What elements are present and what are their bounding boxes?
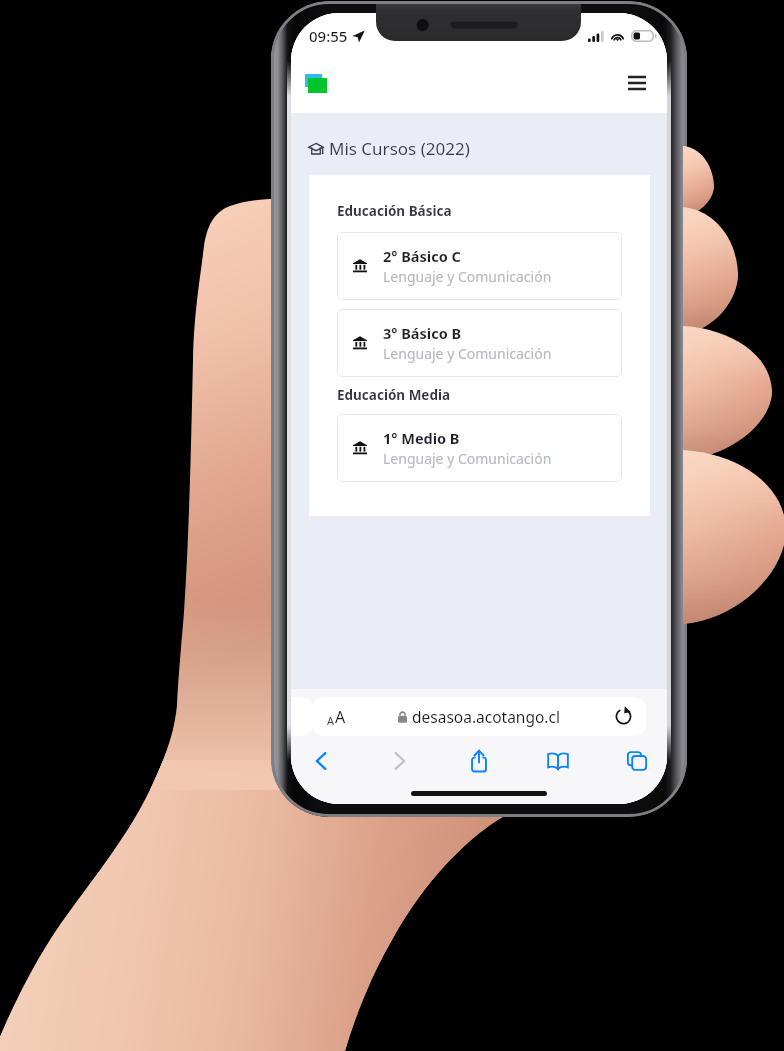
staticText: Educación Básica: [337, 202, 452, 220]
staticText: 09:55: [309, 26, 348, 46]
staticText: Educación Media: [337, 386, 451, 404]
button[interactable]: 3° Básico B: [337, 309, 622, 377]
staticText: Lenguaje y Comunicación: [383, 344, 552, 363]
staticText: Mis Cursos (2022): [329, 137, 470, 160]
button[interactable]: Back: [303, 743, 339, 779]
staticText: A: [327, 713, 335, 728]
button[interactable]: A: [312, 697, 646, 736]
button[interactable]: Logo: [305, 74, 328, 96]
button[interactable]: Forward: [382, 743, 418, 779]
staticText: Lenguaje y Comunicación: [383, 267, 552, 286]
button[interactable]: Menu: [625, 73, 649, 93]
button[interactable]: 2° Básico C: [337, 232, 622, 300]
staticText: A: [335, 706, 346, 728]
button[interactable]: Mis Cursos (2022): [308, 137, 470, 160]
button[interactable]: 1° Medio B: [337, 414, 622, 482]
button[interactable]: Tabs: [619, 743, 655, 779]
staticText: 2° Básico C: [383, 246, 461, 266]
staticText: desasoa.acotango.cl: [412, 706, 560, 727]
button[interactable]: Reload: [613, 706, 634, 727]
button[interactable]: Bookmarks: [540, 743, 576, 779]
staticText: 3° Básico B: [383, 323, 462, 343]
staticText: 1° Medio B: [383, 428, 460, 448]
button[interactable]: Share: [461, 743, 497, 779]
staticText: Lenguaje y Comunicación: [383, 449, 552, 468]
